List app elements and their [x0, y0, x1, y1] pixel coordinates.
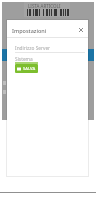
staticText: LISTA ARTICOLI [28, 3, 61, 9]
button[interactable]: SALVA [15, 64, 38, 73]
staticText: Impostazioni [12, 27, 47, 34]
staticText: SALVA [23, 66, 36, 72]
staticText: Indirizzo Server [15, 45, 51, 52]
button[interactable]: Close dialog [75, 24, 86, 35]
staticText: Sistema [15, 56, 33, 63]
